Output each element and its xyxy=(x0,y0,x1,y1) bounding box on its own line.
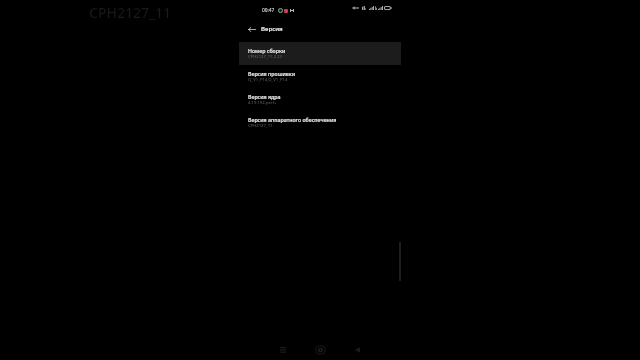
staticText: CPH2127_11 xyxy=(248,123,273,129)
staticText: Версия ядра xyxy=(248,93,281,100)
staticText: 00:47 xyxy=(262,7,275,14)
staticText: Версия прошивки xyxy=(248,70,296,77)
button[interactable]: Recents xyxy=(276,343,290,357)
button[interactable]: Back xyxy=(244,21,260,37)
staticText: Q_V1_P14,Q_V1_P14 xyxy=(248,77,288,83)
staticText: CPH2127_11 xyxy=(89,3,172,22)
staticText: Версия аппаратного обеспечения xyxy=(248,116,337,123)
button[interactable]: Версия ядра xyxy=(239,88,401,111)
button[interactable]: Home xyxy=(313,343,327,357)
button[interactable]: Версия прошивки xyxy=(239,65,401,88)
staticText: Номер сборки xyxy=(248,47,286,54)
staticText: CPH2127_11.2.23 xyxy=(248,54,282,60)
staticText: Версия xyxy=(261,24,283,32)
button[interactable]: Версия аппаратного обеспечения xyxy=(239,111,401,134)
button[interactable]: Back xyxy=(350,343,364,357)
button[interactable]: Номер сборки xyxy=(239,42,401,65)
staticText: 4.19.192-perf+ xyxy=(248,100,277,106)
